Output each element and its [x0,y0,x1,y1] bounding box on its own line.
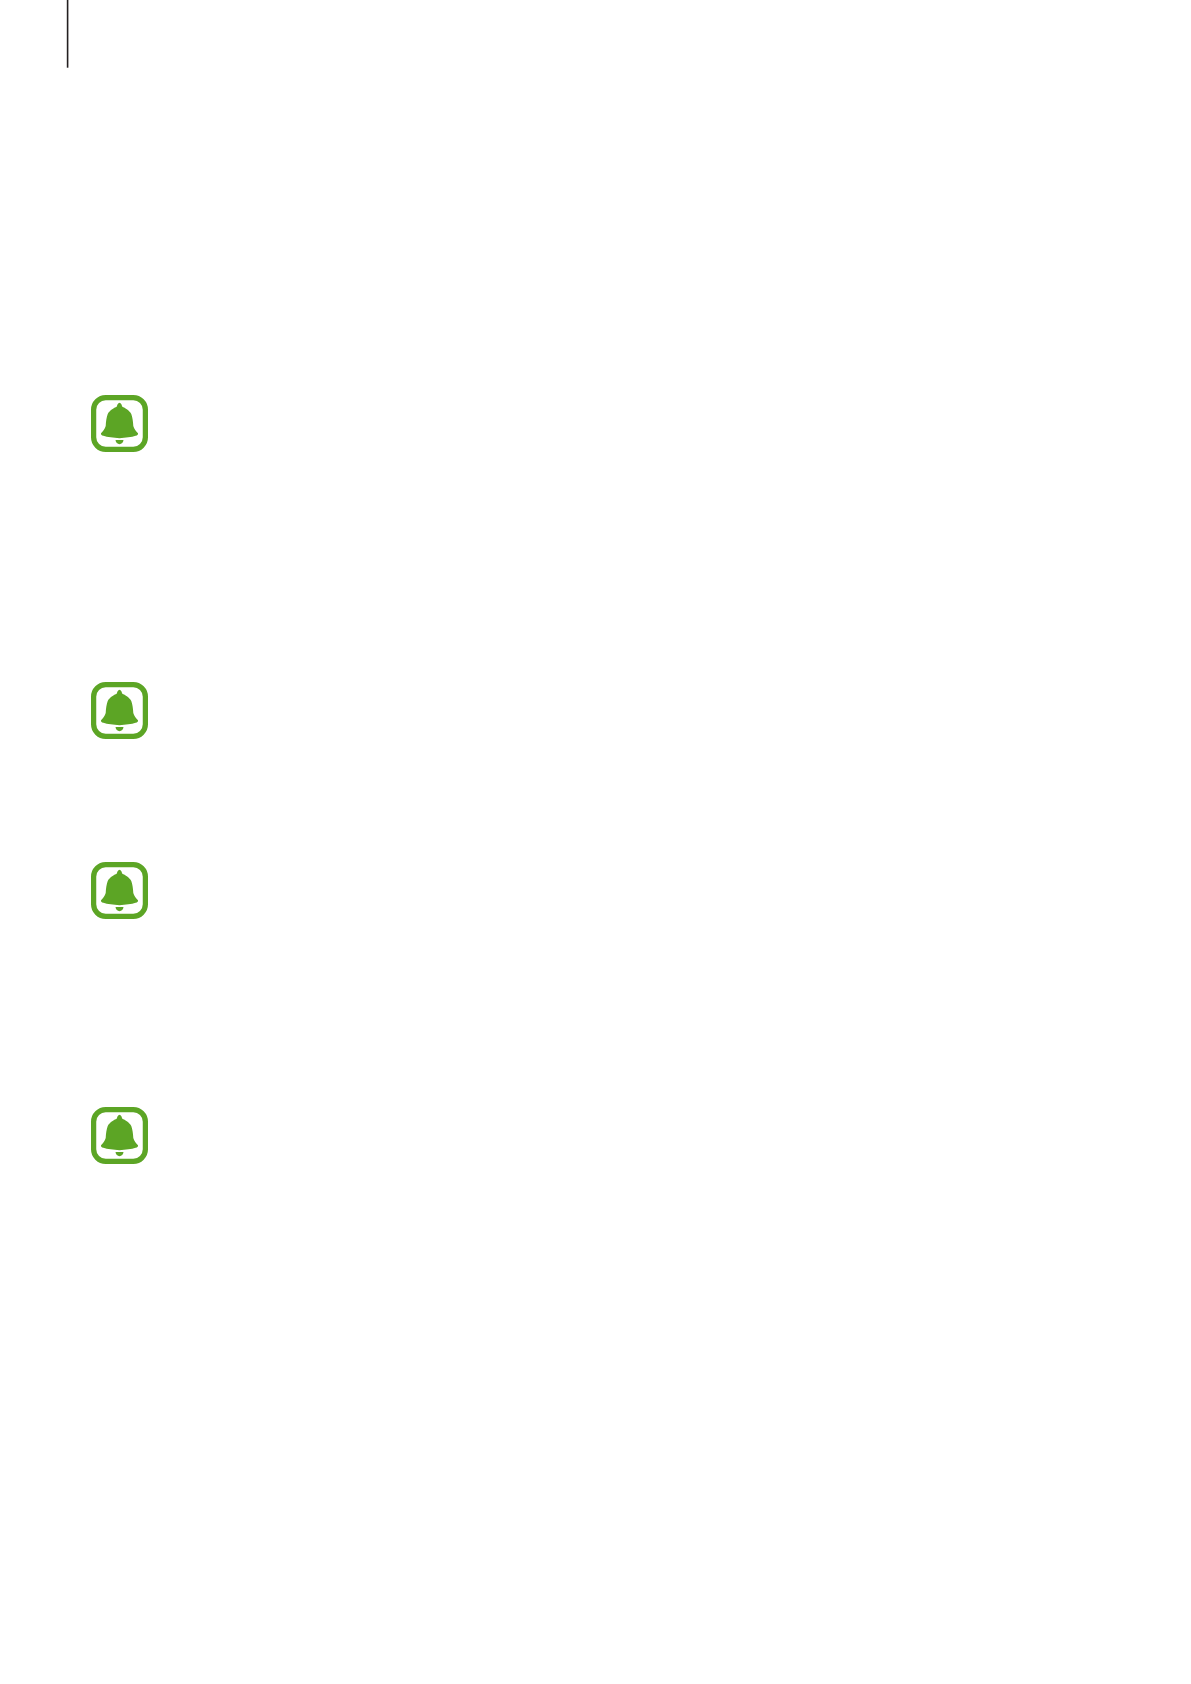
button[interactable]: Notification [91,395,148,452]
button[interactable]: Notification [91,862,148,919]
button[interactable]: Notification [91,682,148,739]
button[interactable]: Notification [91,1107,148,1164]
